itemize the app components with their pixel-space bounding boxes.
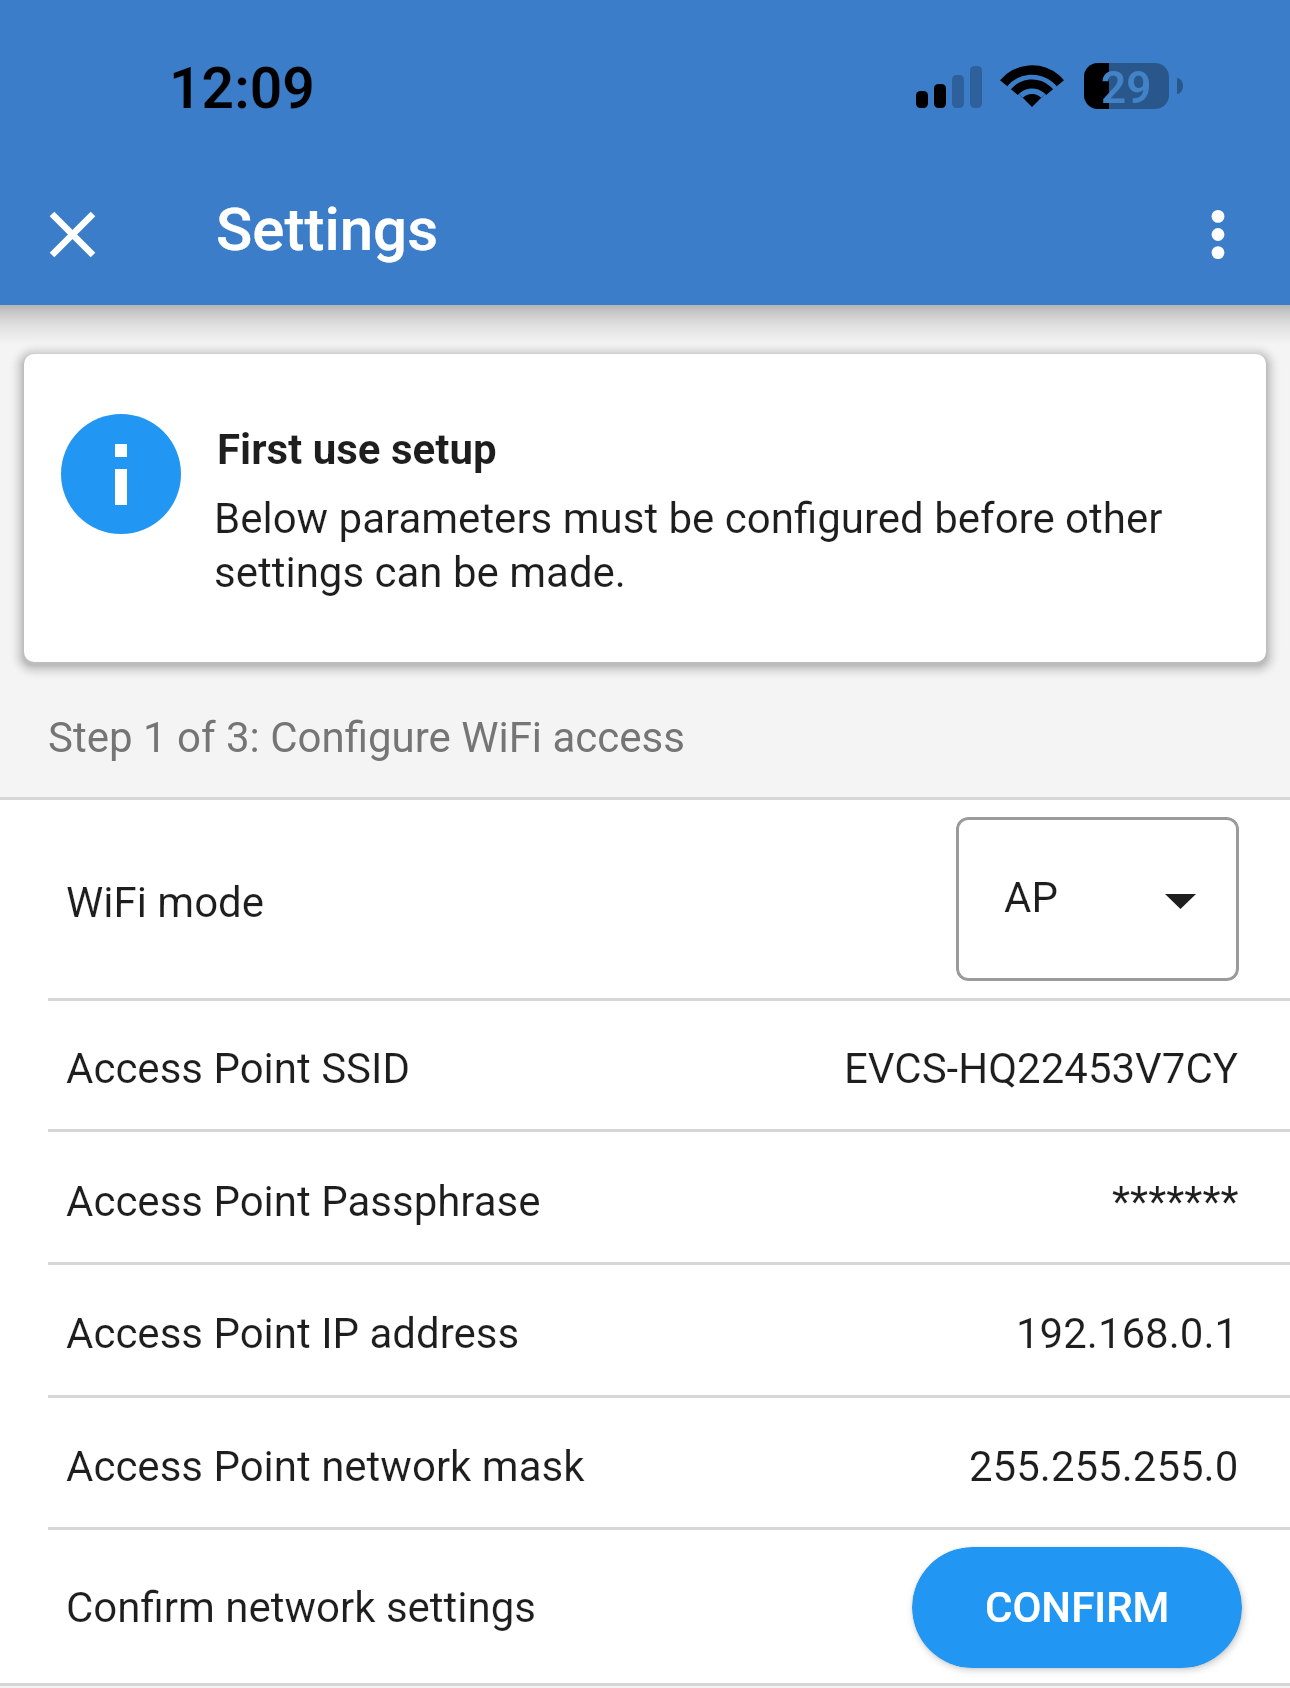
staticText: Settings [216,194,439,264]
button[interactable]: Close [24,186,120,282]
staticText: 12:09 [169,55,315,122]
staticText: Below parameters must be configured befo… [214,494,1204,597]
staticText: AP [1004,873,1058,922]
staticText: Access Point network mask [66,1442,585,1491]
button[interactable]: Access Point network mask [0,1398,1290,1527]
button[interactable]: AP [956,817,1239,981]
staticText: Access Point Passphrase [66,1177,541,1226]
staticText: Access Point SSID [66,1044,411,1093]
staticText: Confirm network settings [66,1583,536,1632]
staticText: Step 1 of 3: Configure WiFi access [48,713,685,762]
staticText: 255.255.255.0 [969,1442,1239,1491]
button[interactable]: Confirm network settings [0,1530,1290,1683]
button[interactable]: CONFIRM [912,1547,1242,1668]
staticText: EVCS-HQ22453V7CY [844,1044,1239,1093]
staticText: First use setup [217,425,497,474]
staticText: CONFIRM [985,1583,1170,1632]
button[interactable]: Access Point IP address [0,1265,1290,1395]
staticText: WiFi mode [66,878,265,927]
button[interactable]: Access Point Passphrase [0,1132,1290,1262]
staticText: 29 [1101,62,1152,114]
staticText: Access Point IP address [66,1309,520,1358]
staticText: ******* [1112,1177,1239,1226]
button[interactable]: More options [1170,186,1266,282]
button[interactable]: WiFi mode [0,800,1290,998]
button[interactable]: Access Point SSID [0,1001,1290,1129]
staticText: 192.168.0.1 [1016,1309,1239,1358]
